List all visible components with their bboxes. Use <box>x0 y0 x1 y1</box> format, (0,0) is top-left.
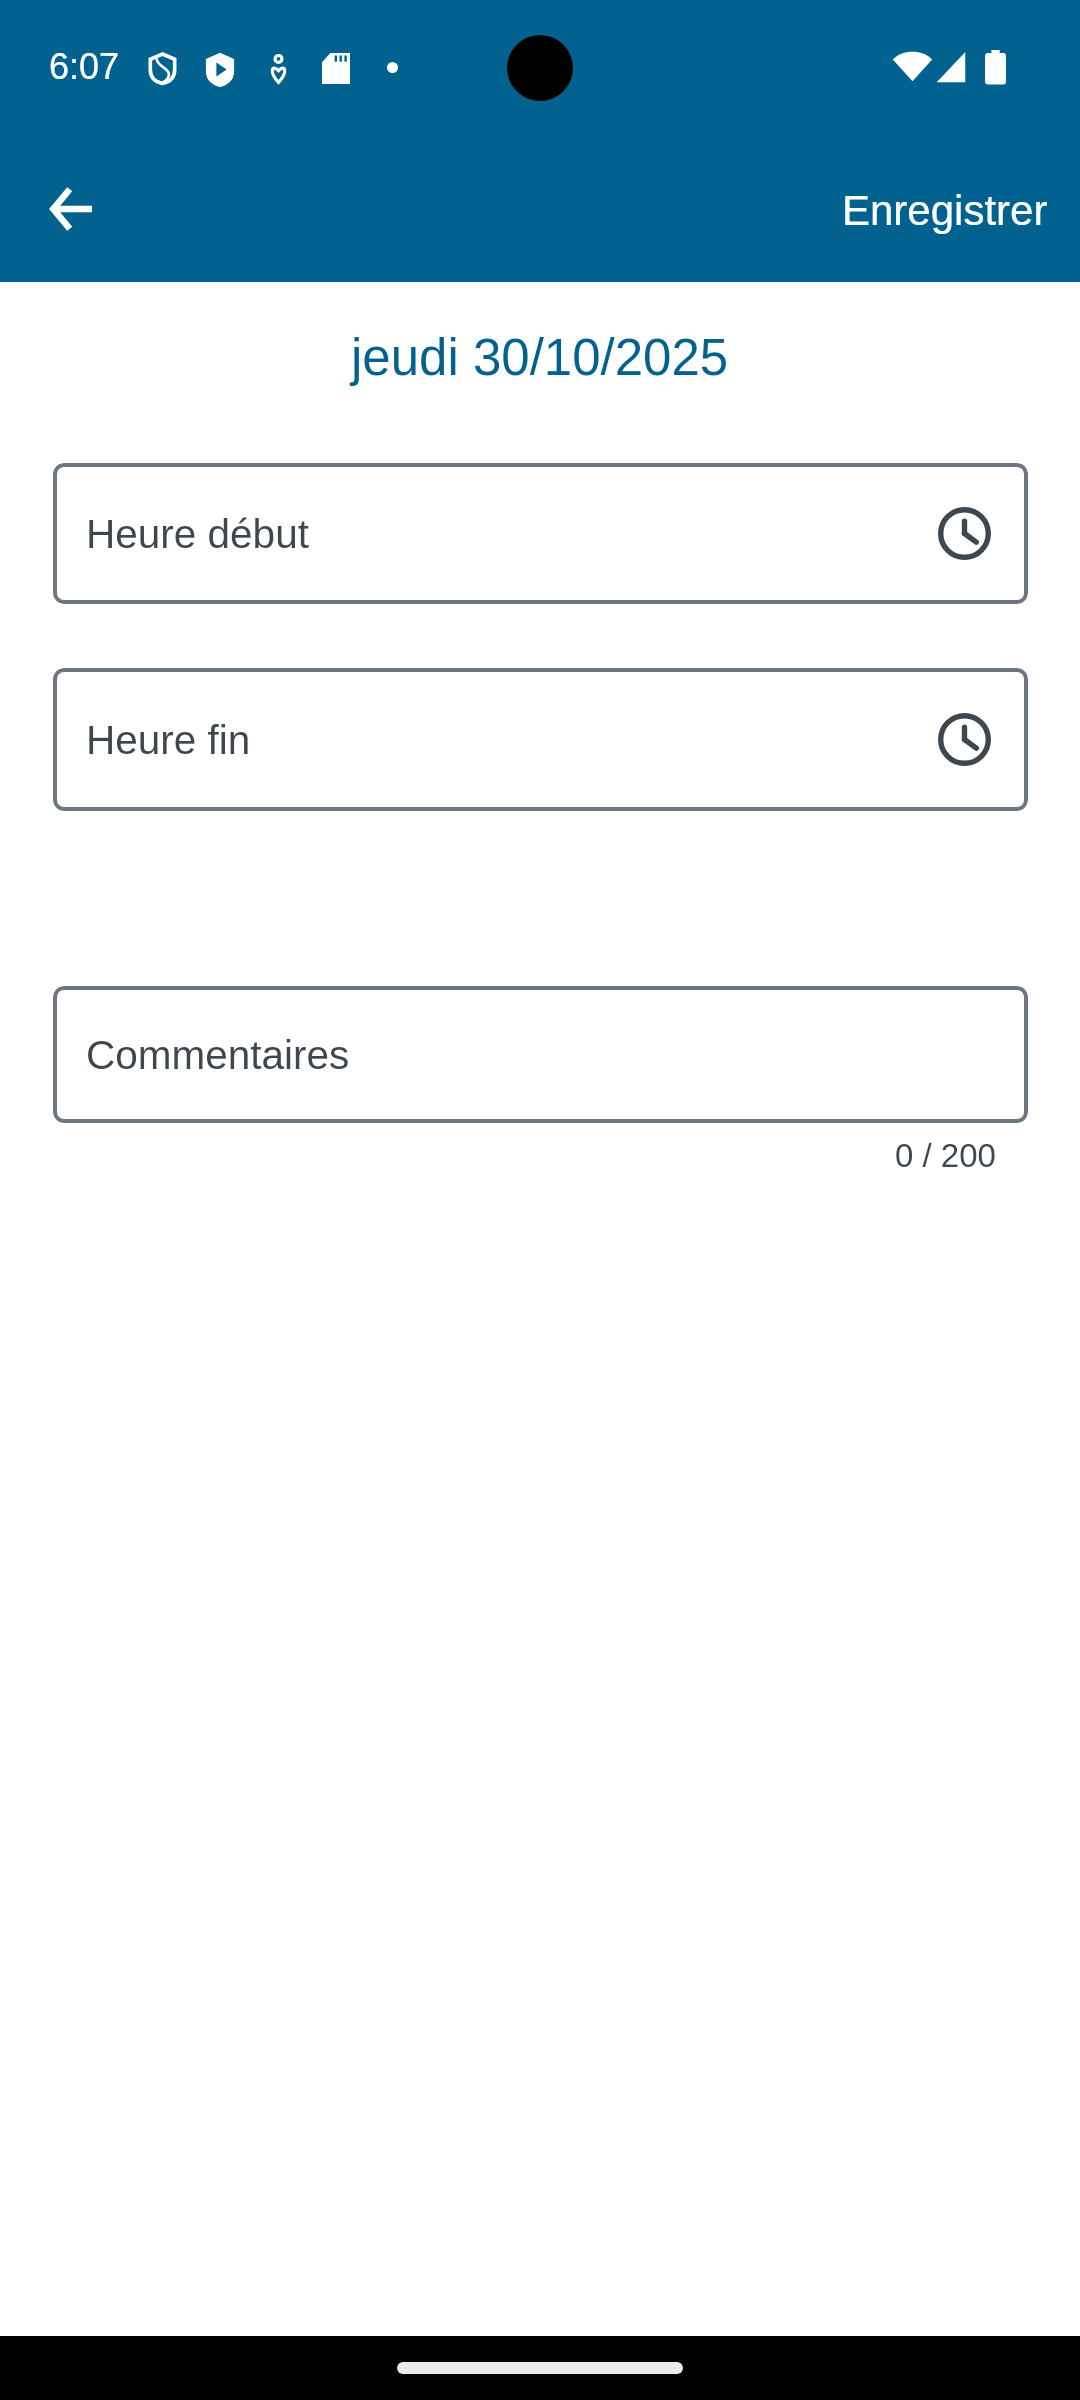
staticText: Enregistrer <box>842 187 1048 234</box>
staticText: 0 / 200 <box>895 1137 996 1174</box>
other: Choisir l'heure <box>938 507 991 560</box>
staticText: jeudi 30/10/2025 <box>351 329 729 386</box>
button[interactable]: Heure fin <box>53 668 1028 811</box>
staticText: Commentaires <box>86 1032 350 1077</box>
button[interactable]: Retour <box>11 149 131 269</box>
button[interactable]: Enregistrer <box>812 168 1078 253</box>
staticText: Heure fin <box>86 717 251 762</box>
button[interactable]: Commentaires <box>53 986 1028 1123</box>
button[interactable]: Heure début <box>53 463 1028 604</box>
other: Choisir l'heure <box>938 713 991 766</box>
staticText: Heure début <box>86 511 309 556</box>
staticText: 6:07 <box>49 46 120 86</box>
